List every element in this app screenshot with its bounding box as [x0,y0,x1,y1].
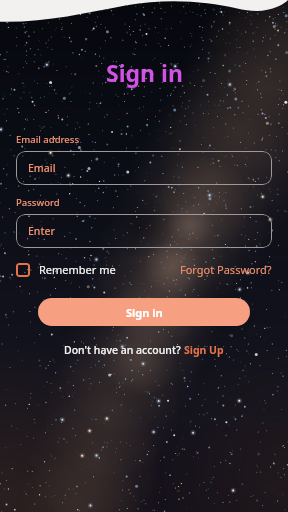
button[interactable]: Forgot Password? [180,262,272,277]
staticText: Email [28,161,56,175]
staticText: Password [16,196,60,209]
staticText: Remember me [39,262,116,277]
staticText: Don't have an account? [64,343,184,357]
button[interactable]: Enter [16,214,272,248]
other: Remember me checkbox [16,263,30,277]
button[interactable]: Remember me checkbox [16,262,116,277]
button[interactable]: Sign in [38,298,250,326]
staticText: Sign in [126,305,163,320]
staticText: Email address [16,133,80,146]
staticText: Enter [28,224,55,238]
staticText: Sign in [106,57,183,88]
button[interactable]: Sign Up [184,343,224,357]
button[interactable]: Email [16,151,272,185]
